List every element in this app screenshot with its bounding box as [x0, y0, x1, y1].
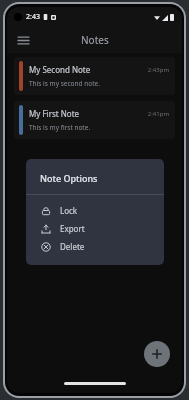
staticText: Export — [60, 223, 85, 234]
staticText: 2:43 — [26, 12, 40, 22]
staticText: Note Options — [40, 172, 98, 184]
button[interactable]: Menu — [13, 30, 33, 50]
button[interactable]: Lock — [26, 201, 164, 219]
button[interactable]: Export — [26, 219, 164, 237]
staticText: 2:43pm — [147, 66, 169, 74]
staticText: My First Note — [29, 108, 147, 119]
staticText: Lock — [60, 205, 78, 216]
staticText: This is my first note. — [29, 123, 91, 132]
button[interactable]: My Second Note — [14, 57, 175, 95]
button[interactable]: My First Note — [14, 101, 175, 139]
staticText: 2:41pm — [147, 110, 169, 118]
button[interactable]: Delete — [26, 237, 164, 255]
button[interactable]: Add note — [144, 341, 170, 367]
staticText: Delete — [60, 241, 85, 252]
staticText: Notes — [81, 33, 109, 47]
staticText: This is my second note. — [29, 79, 100, 88]
staticText: My Second Note — [29, 64, 147, 75]
